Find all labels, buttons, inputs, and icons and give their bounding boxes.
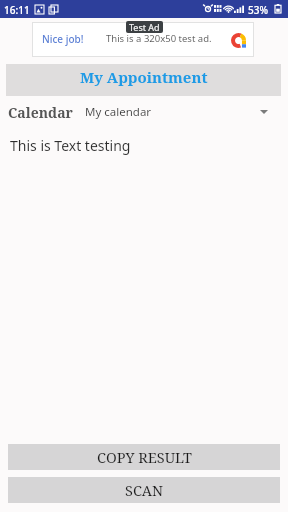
staticText: 53%	[248, 3, 268, 17]
staticText: My calendar	[85, 104, 152, 120]
other: AdMob	[231, 33, 246, 50]
button[interactable]: My Appointment	[6, 64, 281, 96]
staticText: COPY RESULT	[97, 447, 192, 467]
other: Multi window	[49, 5, 58, 14]
other: LTE network	[214, 4, 222, 13]
staticText: This is a 320x50 test ad.	[106, 32, 212, 45]
button[interactable]: COPY RESULT	[8, 444, 280, 470]
other: Wi-Fi signal	[223, 4, 234, 13]
staticText: Calendar	[8, 103, 73, 122]
staticText: Nice job!	[42, 32, 84, 46]
staticText: SCAN	[125, 480, 164, 500]
button[interactable]: SCAN	[8, 477, 280, 503]
other: Battery 53 percent	[275, 4, 281, 13]
staticText: This is Text testing	[10, 136, 131, 155]
button[interactable]: My calendar	[85, 99, 288, 125]
other: Screenshot captured	[35, 5, 44, 14]
other: Alarm set	[204, 4, 212, 13]
button[interactable]: Nice job!	[32, 22, 254, 57]
other: Mobile signal	[234, 4, 244, 13]
staticText: My Appointment	[80, 67, 208, 87]
staticText: 16:11	[4, 3, 30, 17]
staticText: Test Ad	[129, 21, 160, 33]
